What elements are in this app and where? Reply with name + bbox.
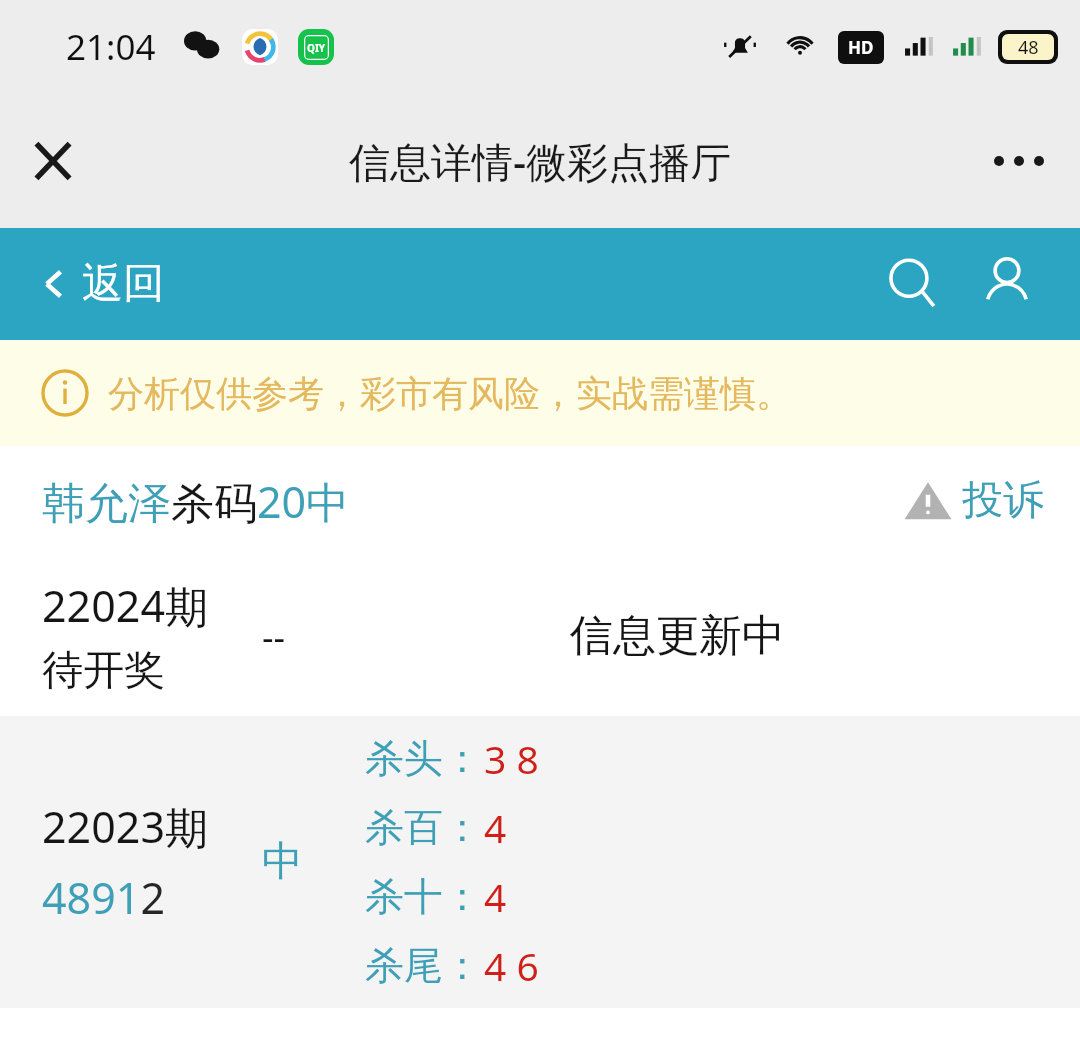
button[interactable]: 22024期: [0, 556, 1080, 716]
button[interactable]: More options: [980, 122, 1058, 200]
staticText: 韩允泽杀码20中: [42, 472, 350, 531]
staticText: 中: [262, 836, 303, 888]
staticText: 4: [484, 870, 507, 923]
staticText: 4: [484, 801, 507, 854]
staticText: 48912: [42, 868, 165, 927]
staticText: QIY: [307, 41, 326, 55]
staticText: 信息更新中: [570, 609, 785, 663]
staticText: HD: [848, 36, 874, 59]
button[interactable]: Search: [870, 241, 956, 327]
other: Silent mode: [722, 29, 758, 65]
staticText: 48: [1018, 35, 1039, 60]
staticText: 21:04: [66, 23, 156, 71]
staticText: 杀尾：: [365, 941, 482, 990]
button[interactable]: 韩允泽杀码20中: [30, 462, 362, 541]
staticText: 待开奖: [42, 645, 165, 697]
staticText: 杀十：: [365, 872, 482, 921]
staticText: 投诉: [962, 475, 1044, 527]
staticText: 杀头：: [365, 734, 482, 783]
button[interactable]: 22023期: [0, 716, 1080, 1008]
staticText: 杀百：: [365, 803, 482, 852]
button[interactable]: 投诉: [892, 465, 1054, 537]
staticText: 22023期: [42, 797, 208, 856]
staticText: 3 8: [484, 732, 539, 785]
staticText: 信息详情-微彩点播厅: [349, 133, 732, 189]
button[interactable]: Close: [14, 122, 92, 200]
other: Wi-Fi: [782, 29, 818, 65]
staticText: 返回: [82, 258, 164, 310]
staticText: --: [262, 612, 286, 661]
staticText: 分析仅供参考，彩市有风险，实战需谨慎。: [108, 371, 792, 416]
button[interactable]: Account: [964, 241, 1050, 327]
staticText: 4 6: [484, 939, 539, 992]
button[interactable]: 返回: [30, 248, 170, 320]
staticText: 22024期: [42, 576, 208, 635]
